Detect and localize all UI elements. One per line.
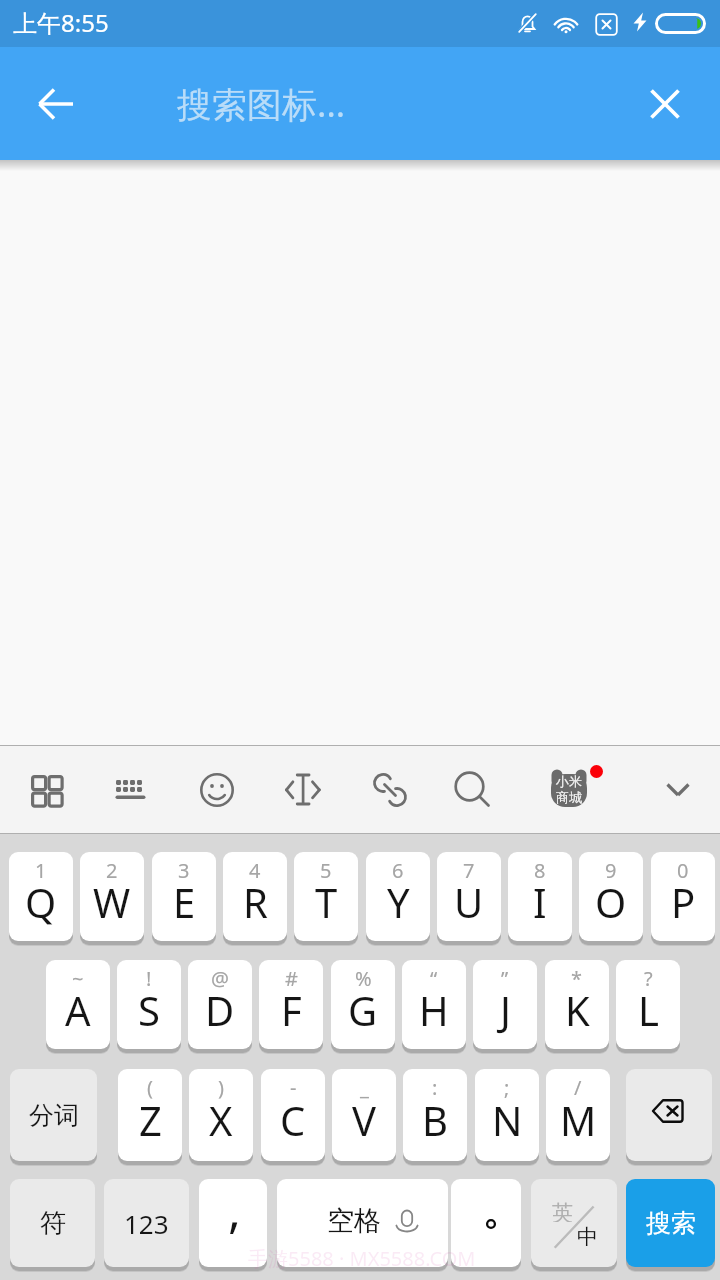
button[interactable]: ) <box>189 1069 253 1161</box>
button[interactable]: # <box>259 960 323 1049</box>
button[interactable]: @ <box>188 960 252 1049</box>
button[interactable]: “ <box>402 960 466 1049</box>
staticText: 1 <box>35 857 47 884</box>
button[interactable]: Keyboard layout <box>88 746 174 833</box>
button[interactable]: Categories <box>3 746 89 833</box>
staticText: 3 <box>178 857 190 884</box>
staticText: 上午8:55 <box>13 6 109 39</box>
button[interactable]: 3 <box>152 852 216 941</box>
button[interactable]: - <box>261 1069 325 1161</box>
button[interactable]: 123 <box>104 1179 189 1267</box>
button[interactable]: Mi Store <box>526 746 612 833</box>
staticText: N <box>492 1093 523 1147</box>
button[interactable]: Backspace <box>626 1069 712 1161</box>
button[interactable]: / <box>546 1069 610 1161</box>
staticText: J <box>500 983 511 1037</box>
staticText: ~ <box>72 965 84 992</box>
staticText: - <box>290 1074 297 1101</box>
staticText: 小米 <box>556 773 582 789</box>
staticText: ) <box>218 1074 224 1101</box>
staticText: G <box>348 983 378 1037</box>
button[interactable]: Hide keyboard <box>635 746 720 833</box>
staticText: 6 <box>392 857 404 884</box>
button[interactable]: Search <box>430 746 516 833</box>
staticText: D <box>205 983 235 1037</box>
staticText: W <box>93 875 131 929</box>
staticText: A <box>65 983 91 1037</box>
staticText: 8 <box>534 857 546 884</box>
staticText: ; <box>504 1074 510 1101</box>
staticText: % <box>355 965 372 992</box>
staticText: Z <box>139 1093 162 1147</box>
staticText: # <box>285 965 298 992</box>
staticText: 分词 <box>29 1100 79 1131</box>
button[interactable]: 9 <box>579 852 643 941</box>
button[interactable]: ( <box>118 1069 182 1161</box>
staticText: ! <box>146 965 152 992</box>
staticText: * <box>571 965 583 992</box>
staticText: 搜索 <box>646 1208 696 1239</box>
staticText: Q <box>25 875 57 929</box>
button[interactable]: Emoji <box>174 746 260 833</box>
staticText: P <box>671 875 696 929</box>
staticText: S <box>138 983 160 1037</box>
staticText: E <box>173 875 196 929</box>
button[interactable]: 2 <box>80 852 144 941</box>
staticText: 符 <box>40 1207 66 1240</box>
button[interactable]: 搜索 <box>626 1179 715 1267</box>
staticText: O <box>595 875 627 929</box>
button[interactable]: 0 <box>651 852 715 941</box>
staticText: 手游5588 · MX5588.COM <box>248 1245 476 1272</box>
button[interactable]: 6 <box>366 852 430 941</box>
staticText: 中 <box>577 1224 598 1246</box>
button[interactable]: 7 <box>437 852 501 941</box>
button[interactable]: 8 <box>508 852 572 941</box>
staticText: Y <box>387 875 410 929</box>
staticText: 5 <box>320 857 332 884</box>
staticText: F <box>281 983 302 1037</box>
staticText: 9 <box>605 857 617 884</box>
staticText: I <box>533 875 547 929</box>
staticText: , <box>228 1179 241 1242</box>
button[interactable]: ; <box>475 1069 539 1161</box>
button[interactable]: * <box>545 960 609 1049</box>
staticText: M <box>560 1093 597 1147</box>
staticText: ( <box>147 1074 153 1101</box>
button[interactable]: 5 <box>294 852 358 941</box>
button[interactable] <box>451 1179 521 1267</box>
button[interactable]: 英 <box>531 1179 617 1267</box>
staticText: 4 <box>249 857 261 884</box>
staticText: ” <box>501 965 509 992</box>
button[interactable]: 4 <box>223 852 287 941</box>
button[interactable]: % <box>331 960 395 1049</box>
button[interactable]: ” <box>473 960 537 1049</box>
button[interactable]: , <box>199 1179 267 1267</box>
button[interactable]: ? <box>616 960 680 1049</box>
staticText: C <box>280 1093 306 1147</box>
staticText: K <box>565 983 590 1037</box>
button[interactable]: _ <box>332 1069 396 1161</box>
staticText: 英 <box>552 1200 573 1222</box>
staticText: 123 <box>124 1206 169 1241</box>
staticText: T <box>315 875 338 929</box>
button[interactable]: Clipboard <box>347 746 433 833</box>
button[interactable]: : <box>403 1069 467 1161</box>
button[interactable]: 分词 <box>10 1069 97 1161</box>
button[interactable]: 空格 <box>277 1179 448 1267</box>
staticText: L <box>638 983 659 1037</box>
staticText: R <box>243 875 268 929</box>
staticText: ? <box>644 965 653 992</box>
button[interactable]: ~ <box>46 960 110 1049</box>
staticText: : <box>432 1074 438 1101</box>
staticText: H <box>419 983 449 1037</box>
staticText: V <box>352 1093 376 1147</box>
button[interactable]: 符 <box>10 1179 95 1267</box>
button[interactable]: Clear <box>610 47 720 160</box>
staticText: 7 <box>463 857 475 884</box>
button[interactable]: ! <box>117 960 181 1049</box>
button[interactable]: Back <box>0 47 112 160</box>
button[interactable]: 1 <box>9 852 73 941</box>
button[interactable]: Text editing <box>260 746 346 833</box>
staticText: 商城 <box>556 789 582 805</box>
staticText: 0 <box>677 857 689 884</box>
